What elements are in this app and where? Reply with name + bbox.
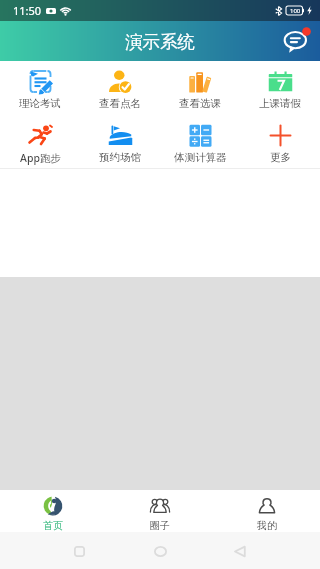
- button[interactable]: 首页: [0, 491, 106, 532]
- staticText: 11:50: [13, 3, 42, 18]
- staticText: 圈子: [150, 519, 170, 532]
- button[interactable]: 圈子: [106, 491, 213, 532]
- staticText: 体测计算器: [174, 151, 227, 164]
- button[interactable]: App跑步: [0, 115, 80, 165]
- staticText: App跑步: [20, 151, 61, 165]
- staticText: 演示系统: [125, 31, 195, 53]
- button[interactable]: 我的: [213, 491, 320, 532]
- staticText: 我的: [257, 519, 277, 532]
- staticText: 首页: [43, 519, 63, 532]
- button[interactable]: 更多: [240, 115, 320, 164]
- button[interactable]: Home: [146, 537, 174, 565]
- staticText: 100: [290, 7, 301, 15]
- staticText: 上课请假: [259, 97, 301, 110]
- button[interactable]: Back: [226, 537, 254, 565]
- staticText: 理论考试: [19, 97, 61, 110]
- button[interactable]: 查看点名: [80, 61, 160, 110]
- staticText: 预约场馆: [99, 151, 141, 164]
- staticText: 更多: [270, 151, 291, 164]
- staticText: 查看选课: [179, 97, 221, 110]
- button[interactable]: 查看选课: [160, 61, 240, 110]
- button[interactable]: 理论考试: [0, 61, 80, 110]
- button[interactable]: 体测计算器: [160, 115, 240, 164]
- staticText: 查看点名: [99, 97, 141, 110]
- button[interactable]: 预约场馆: [80, 115, 160, 164]
- button[interactable]: Messages: [280, 24, 314, 58]
- button[interactable]: Recents: [65, 537, 93, 565]
- button[interactable]: 上课请假: [240, 61, 320, 110]
